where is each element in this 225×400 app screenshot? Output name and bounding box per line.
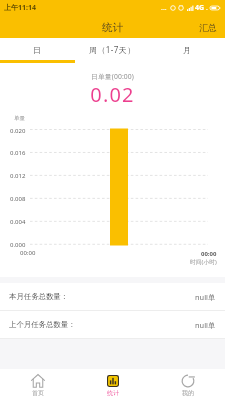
button[interactable]: 本月任务总数量： [0,283,225,310]
staticText: 0.008 [10,195,26,203]
staticText: 本月任务总数量： [9,292,69,301]
staticText: 时间(小时) [190,258,217,266]
staticText: 上午11:14 [4,3,36,13]
staticText: 4G [195,3,205,13]
button[interactable]: 周（1-7天） [75,38,150,61]
staticText: 0.016 [10,149,26,157]
staticText: 月 [183,45,192,55]
staticText: null单 [195,320,216,330]
staticText: 日 [33,45,42,55]
staticText: 日单量(00:00) [0,72,225,81]
staticText: 0.012 [10,172,26,180]
staticText: . [206,3,208,13]
staticText: 上个月任务总数量： [9,320,76,329]
staticText: 0.020 [10,127,26,135]
button[interactable]: 汇总 [190,17,225,38]
staticText: 统计 [102,21,123,34]
button[interactable]: Mine [150,369,225,400]
staticText: null单 [195,292,216,302]
staticText: 周（1-7天） [89,44,136,55]
staticText: 单量 [14,115,25,122]
staticText: ... [161,3,167,13]
button[interactable]: 日 [0,38,75,61]
staticText: 我的 [182,389,194,397]
staticText: 00:00 [201,250,217,258]
button[interactable]: Statistics [75,369,150,400]
staticText: 0.000 [10,241,26,249]
staticText: 0.004 [10,218,26,226]
staticText: 0.02 [0,81,225,108]
button[interactable]: Home [0,369,75,400]
button[interactable]: 上个月任务总数量： [0,311,225,338]
staticText: 统计 [107,389,119,397]
staticText: 00:00 [20,249,36,257]
staticText: 首页 [32,389,44,397]
staticText: 汇总 [199,22,217,33]
button[interactable]: 月 [150,38,225,61]
